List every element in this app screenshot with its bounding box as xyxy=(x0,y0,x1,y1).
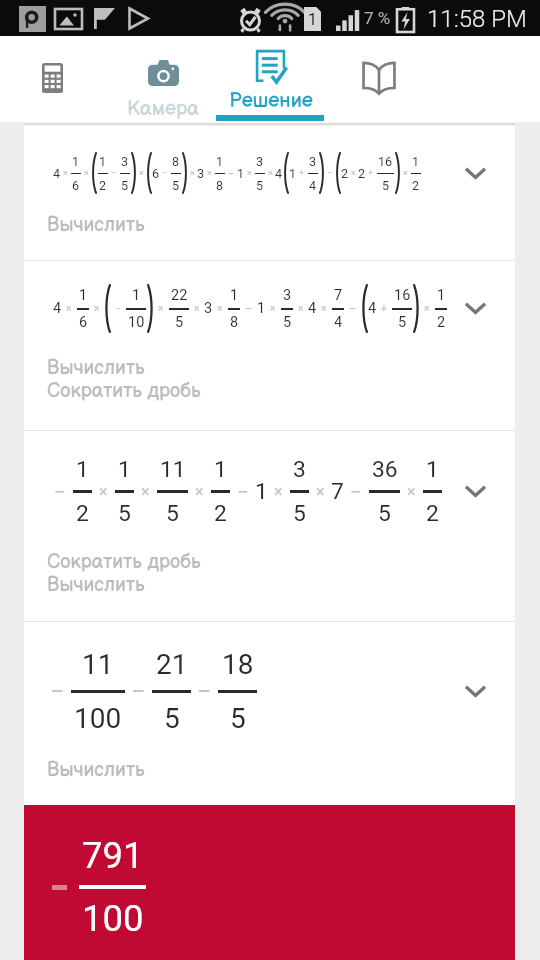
staticText: × xyxy=(194,303,200,315)
staticText: Вычислить xyxy=(47,758,145,781)
button[interactable]: 4 xyxy=(24,261,515,430)
staticText: 4 xyxy=(53,300,62,317)
staticText: 5 xyxy=(293,500,306,527)
staticText: 3 xyxy=(197,166,205,181)
staticText: 5 xyxy=(378,500,391,527)
staticText: × xyxy=(207,168,212,178)
staticText: 7 xyxy=(331,478,344,505)
staticText: 3 xyxy=(309,154,317,169)
button[interactable]: Calculator xyxy=(0,36,105,122)
staticText: 4 xyxy=(368,300,377,317)
staticText: 1 xyxy=(412,154,420,169)
staticText: 11 xyxy=(160,456,186,483)
staticText: 1 xyxy=(99,154,107,169)
staticText: 5 xyxy=(172,178,180,193)
button[interactable]: Решение xyxy=(216,36,325,122)
staticText: 1 xyxy=(76,456,89,483)
staticText: − xyxy=(228,167,235,180)
button[interactable]: Expand step xyxy=(452,668,498,714)
staticText: − xyxy=(350,480,362,504)
staticText: 1 xyxy=(257,300,266,317)
staticText: − xyxy=(50,677,65,707)
staticText: − xyxy=(54,480,66,504)
staticText: × xyxy=(268,168,273,178)
staticText: Сократить дробь xyxy=(47,550,201,573)
staticText: 4 xyxy=(308,300,317,317)
staticText: 5 xyxy=(382,178,390,193)
staticText: 5 xyxy=(118,500,131,527)
staticText: 1 xyxy=(308,10,317,29)
staticText: 8 xyxy=(230,314,239,331)
staticText: 5 xyxy=(121,178,129,193)
button[interactable]: 791 xyxy=(24,805,515,960)
staticText: 1 xyxy=(214,456,227,483)
staticText: 3 xyxy=(121,154,129,169)
staticText: × xyxy=(270,303,276,315)
staticText: 2 xyxy=(99,178,107,193)
staticText: + xyxy=(299,168,305,178)
staticText: × xyxy=(139,168,144,178)
staticText: × xyxy=(298,303,304,315)
staticText: 100 xyxy=(82,897,144,940)
staticText: 11 xyxy=(82,648,114,681)
staticText: 16 xyxy=(378,154,393,169)
staticText: 6 xyxy=(79,314,88,331)
staticText: Решение xyxy=(229,89,313,113)
staticText: 1 xyxy=(289,166,297,181)
staticText: Сократить дробь xyxy=(47,379,201,402)
staticText: 4 xyxy=(334,314,343,331)
staticText: 2 xyxy=(358,166,366,181)
staticText: − xyxy=(111,168,117,178)
staticText: 3 xyxy=(293,456,306,483)
staticText: − xyxy=(197,677,212,707)
staticText: 21 xyxy=(156,648,188,681)
staticText: 1 xyxy=(132,287,141,304)
staticText: × xyxy=(217,303,223,315)
staticText: 1 xyxy=(237,166,245,181)
staticText: × xyxy=(316,482,325,501)
staticText: 5 xyxy=(175,314,184,331)
staticText: 1 xyxy=(79,287,88,304)
staticText: 10 xyxy=(128,314,145,331)
staticText: × xyxy=(321,303,327,315)
staticText: Камера xyxy=(127,97,200,121)
staticText: 18 xyxy=(222,648,254,681)
button[interactable]: Expand step xyxy=(452,150,498,196)
staticText: × xyxy=(274,482,283,501)
staticText: 5 xyxy=(164,702,180,735)
staticText: × xyxy=(247,168,252,178)
staticText: − xyxy=(131,677,146,707)
button[interactable]: Expand step xyxy=(452,285,498,331)
staticText: − xyxy=(245,301,253,316)
staticText: 2 xyxy=(214,500,227,527)
button[interactable]: Dictionary xyxy=(326,36,431,122)
button[interactable]: Камера xyxy=(106,36,221,122)
staticText: 7 xyxy=(334,287,343,304)
staticText: 6 xyxy=(72,178,80,193)
staticText: Вычислить xyxy=(47,573,145,596)
staticText: 1 xyxy=(230,287,239,304)
staticText: 4 xyxy=(309,178,317,193)
staticText: 4 xyxy=(53,166,61,181)
button[interactable]: Expand step xyxy=(452,468,498,514)
staticText: 1 xyxy=(118,456,131,483)
staticText: 4 xyxy=(275,166,283,181)
staticText: 791 xyxy=(82,834,144,877)
staticText: 2 xyxy=(426,500,439,527)
button[interactable]: − xyxy=(24,622,515,805)
staticText: × xyxy=(424,303,430,315)
staticText: 1 xyxy=(426,456,439,483)
staticText: 8 xyxy=(172,154,180,169)
staticText: − xyxy=(327,168,333,178)
staticText: 5 xyxy=(166,500,179,527)
staticText: + xyxy=(381,303,387,315)
staticText: 2 xyxy=(412,178,420,193)
staticText: 1 xyxy=(216,154,224,169)
staticText: − xyxy=(162,168,168,178)
staticText: 1 xyxy=(437,287,446,304)
staticText: × xyxy=(190,168,195,178)
staticText: − xyxy=(115,303,121,315)
button[interactable]: − xyxy=(24,431,515,621)
staticText: × xyxy=(63,168,68,178)
button[interactable]: 4 xyxy=(24,126,515,260)
